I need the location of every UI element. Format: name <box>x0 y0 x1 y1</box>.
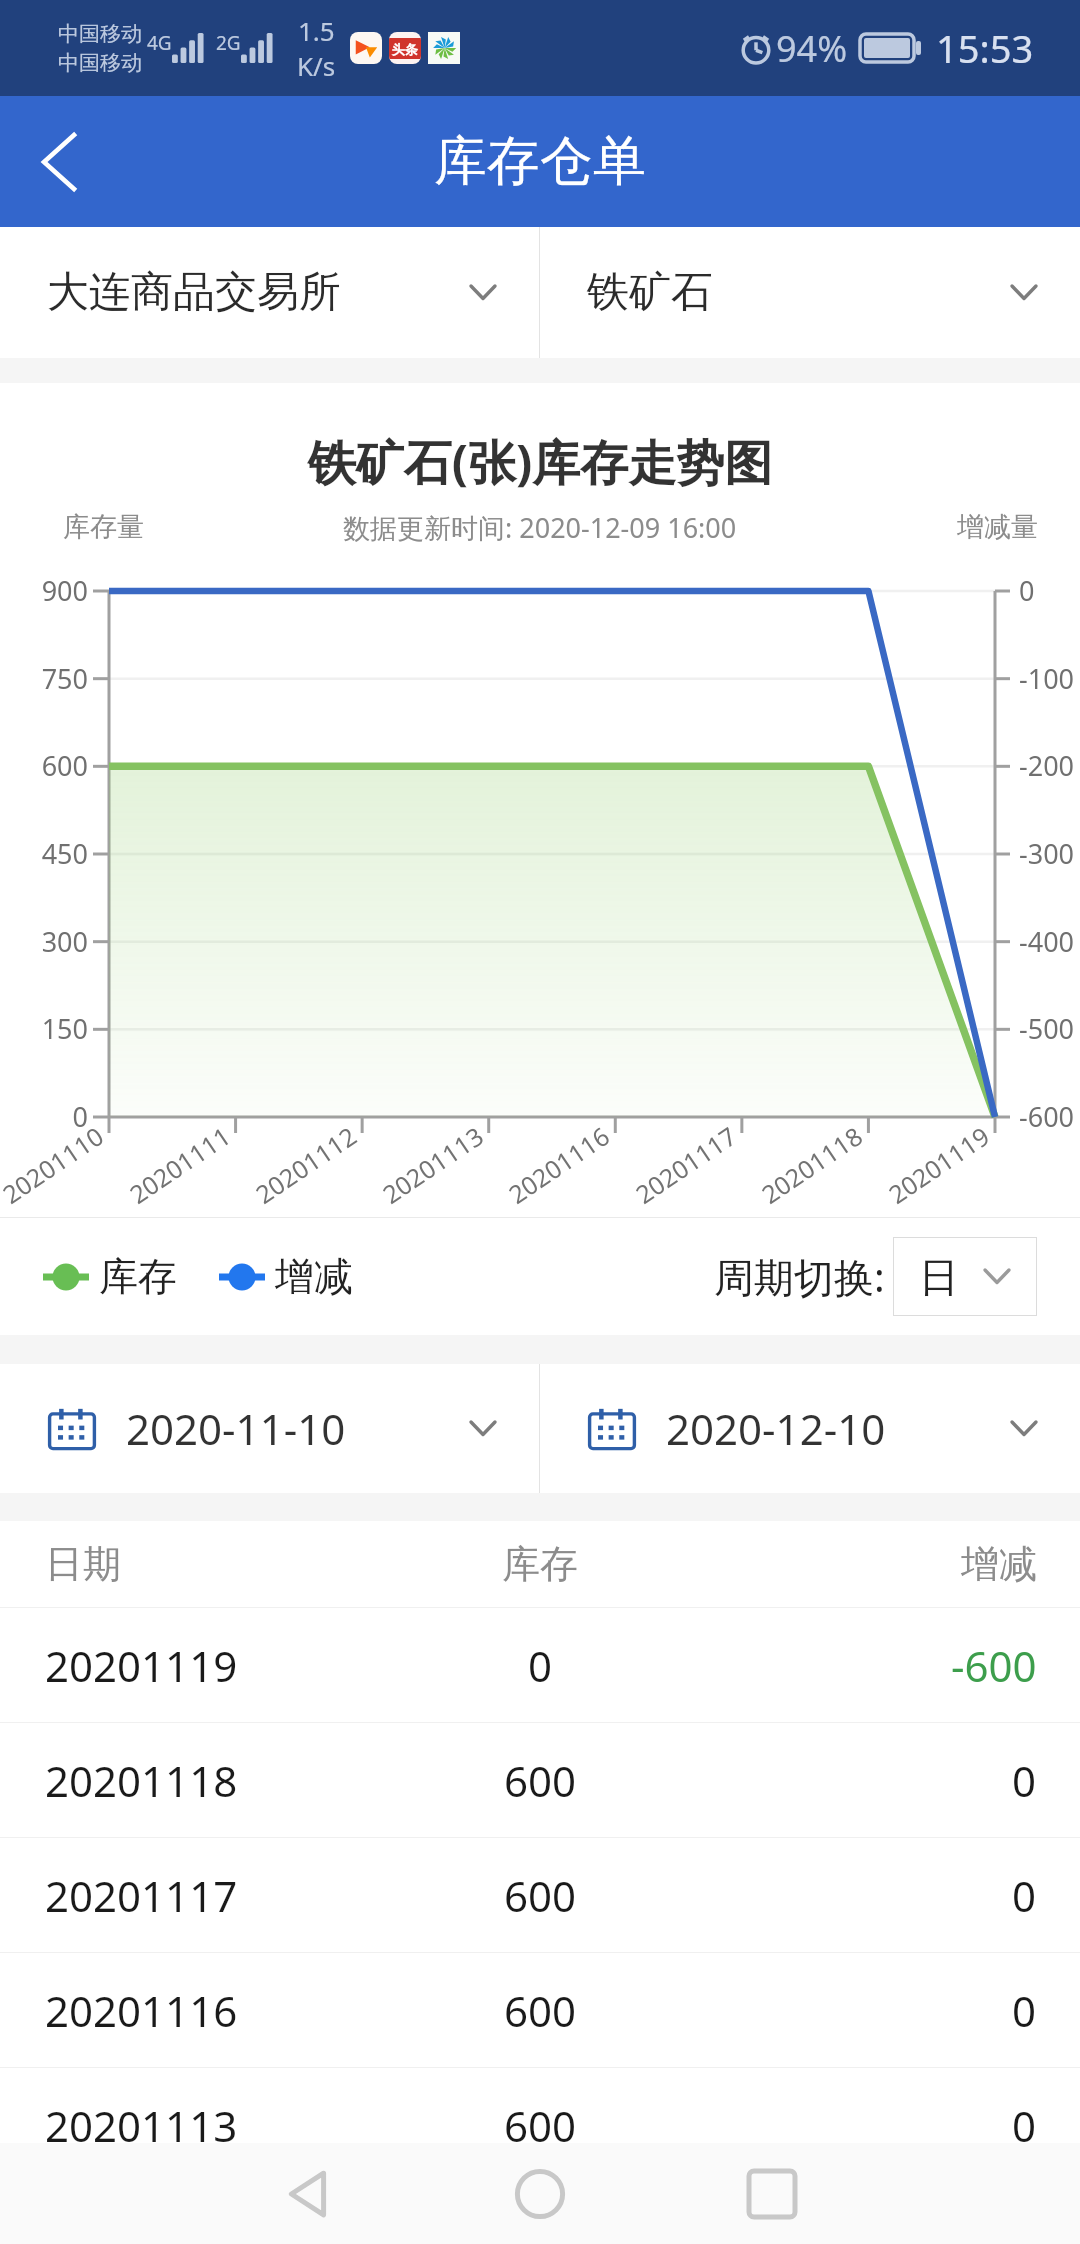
staticText: 600 <box>504 2097 577 2154</box>
staticText: 日 <box>919 1252 959 1302</box>
staticText: 750 <box>0 660 88 697</box>
staticText: 600 <box>504 1867 577 1924</box>
staticText: 20201119 <box>882 1118 996 1211</box>
button[interactable]: 2020-11-10 <box>0 1364 539 1493</box>
staticText: 20201111 <box>123 1118 237 1211</box>
staticText: 600 <box>504 1982 577 2039</box>
staticText: 15:53 <box>936 22 1034 74</box>
staticText: 20201113 <box>376 1118 490 1211</box>
button[interactable]: 库存 <box>43 1252 177 1301</box>
staticText: 20201117 <box>629 1118 743 1211</box>
staticText: 20201119 <box>45 1637 238 1694</box>
staticText: 20201118 <box>45 1752 238 1809</box>
staticText: K/s <box>297 48 336 83</box>
staticText: -100 <box>1019 660 1075 697</box>
staticText: 20201116 <box>502 1118 616 1211</box>
staticText: 0 <box>528 1637 553 1694</box>
staticText: 铁矿石 <box>587 266 713 319</box>
staticText: -600 <box>1019 1098 1075 1135</box>
staticText: 900 <box>0 572 88 609</box>
staticText: 20201117 <box>45 1867 238 1924</box>
staticText: 20201118 <box>755 1118 869 1211</box>
staticText: 0 <box>1019 572 1035 609</box>
staticText: 0 <box>0 1098 88 1135</box>
staticText: 4G <box>147 30 172 56</box>
button[interactable]: Back <box>238 2143 378 2244</box>
staticText: 600 <box>0 747 88 784</box>
staticText: 94% <box>776 24 848 73</box>
button[interactable]: 20201116 <box>0 1953 1080 2067</box>
button[interactable]: Recent apps <box>702 2143 842 2244</box>
staticText: 450 <box>0 835 88 872</box>
staticText: 2020-11-10 <box>126 1400 346 1457</box>
staticText: 600 <box>504 1752 577 1809</box>
staticText: 库存量 <box>63 510 144 544</box>
button[interactable]: 日 <box>893 1237 1037 1316</box>
staticText: 20201110 <box>0 1118 110 1211</box>
staticText: 0 <box>1012 1752 1037 1809</box>
staticText: -400 <box>1019 923 1075 960</box>
staticText: 1.5 <box>298 13 335 48</box>
button[interactable]: 20201117 <box>0 1838 1080 1952</box>
staticText: 头条 <box>392 41 418 57</box>
staticText: 周期切换: <box>714 1249 885 1304</box>
button[interactable]: 增减 <box>219 1252 353 1301</box>
staticText: 0 <box>1012 1982 1037 2039</box>
staticText: -500 <box>1019 1010 1075 1047</box>
staticText: 中国移动 <box>58 21 142 47</box>
staticText: -600 <box>951 1637 1037 1694</box>
button[interactable]: 20201118 <box>0 1723 1080 1837</box>
staticText: 日期 <box>45 1540 121 1588</box>
button[interactable]: 20201113 <box>0 2068 1080 2182</box>
staticText: 大连商品交易所 <box>47 266 341 319</box>
staticText: 0 <box>1012 1867 1037 1924</box>
staticText: 中国移动 <box>58 50 142 76</box>
staticText: 库存 <box>502 1540 578 1588</box>
staticText: 增减 <box>961 1540 1037 1588</box>
staticText: 增减 <box>275 1252 353 1301</box>
staticText: -200 <box>1019 747 1075 784</box>
staticText: 20201113 <box>45 2097 238 2154</box>
staticText: 库存仓单 <box>434 128 646 195</box>
staticText: 数据更新时间: 2020-12-09 16:00 <box>343 509 737 544</box>
staticText: 300 <box>0 923 88 960</box>
staticText: 150 <box>0 1010 88 1047</box>
staticText: 2G <box>216 30 241 56</box>
staticText: 库存 <box>99 1252 177 1301</box>
button[interactable]: 20201119 <box>0 1608 1080 1722</box>
button[interactable]: 铁矿石 <box>540 227 1080 358</box>
staticText: 20201116 <box>45 1982 238 2039</box>
button[interactable]: 大连商品交易所 <box>0 227 539 358</box>
button[interactable]: Home <box>470 2143 610 2244</box>
staticText: 铁矿石(张)库存走势图 <box>0 429 1080 495</box>
staticText: 2020-12-10 <box>666 1400 886 1457</box>
button[interactable]: 2020-12-10 <box>540 1364 1080 1493</box>
staticText: -300 <box>1019 835 1075 872</box>
staticText: 20201112 <box>249 1118 363 1211</box>
button[interactable]: Back <box>0 96 118 227</box>
staticText: 增减量 <box>957 510 1038 544</box>
staticText: 0 <box>1012 2097 1037 2154</box>
